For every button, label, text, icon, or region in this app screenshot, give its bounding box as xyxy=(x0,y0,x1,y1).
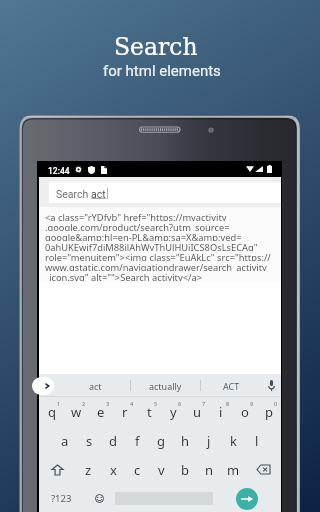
staticText: for html elements xyxy=(103,62,221,80)
staticText: j xyxy=(207,432,211,450)
button[interactable]: o xyxy=(233,397,257,426)
staticText: y xyxy=(170,403,177,421)
button[interactable]: j xyxy=(197,426,221,455)
staticText: 6 xyxy=(178,400,182,407)
staticText: g xyxy=(157,432,165,450)
button[interactable]: z xyxy=(76,455,101,484)
button[interactable]: d xyxy=(101,426,125,455)
staticText: z xyxy=(85,461,92,479)
staticText: u xyxy=(193,403,202,421)
staticText: ACT xyxy=(223,380,240,392)
button[interactable]: n xyxy=(197,455,221,484)
button[interactable]: Enter xyxy=(213,484,281,512)
staticText: d xyxy=(109,432,117,450)
staticText: www.gstatic.com/navigationdrawer/search_… xyxy=(45,261,267,271)
button[interactable]: s xyxy=(77,426,101,455)
button[interactable]: f xyxy=(125,426,149,455)
staticText: v xyxy=(158,461,165,479)
button[interactable]: w xyxy=(64,397,89,426)
button[interactable]: Shift xyxy=(39,455,76,484)
button[interactable]: actually xyxy=(131,374,200,397)
button[interactable]: k xyxy=(221,426,245,455)
staticText: 12:44 xyxy=(48,166,70,176)
staticText: i xyxy=(219,403,223,421)
button[interactable]: l xyxy=(245,426,269,455)
button[interactable]: Space xyxy=(115,484,213,512)
button[interactable]: Voice input xyxy=(261,374,281,397)
staticText: n xyxy=(205,461,214,479)
staticText: 4 xyxy=(130,400,134,407)
button[interactable]: v xyxy=(149,455,173,484)
button[interactable]: More suggestions xyxy=(32,377,54,395)
staticText: 0 xyxy=(274,400,278,407)
button[interactable]: m xyxy=(221,455,245,484)
button[interactable]: Search xyxy=(49,182,281,203)
button[interactable]: ACT xyxy=(201,374,261,397)
staticText: f xyxy=(135,432,140,450)
staticText: m xyxy=(227,461,240,479)
staticText: a xyxy=(61,432,69,450)
staticText: 0ahUKEwjf7diM88jlAhWyThUlHUiICS8QsLsECAg… xyxy=(45,241,258,251)
staticText: r xyxy=(122,403,128,421)
staticText: actually xyxy=(149,380,182,392)
staticText: 5 xyxy=(154,400,158,407)
staticText: _icon.svg" alt="">Search activity</a> xyxy=(45,271,202,281)
button[interactable]: ?123 xyxy=(39,484,84,512)
staticText: 7 xyxy=(202,400,206,407)
button[interactable]: r xyxy=(113,397,137,426)
staticText: s xyxy=(86,432,93,450)
staticText: Search xyxy=(114,33,198,60)
staticText: k xyxy=(230,432,237,450)
button[interactable]: p xyxy=(257,397,281,426)
button[interactable]: g xyxy=(149,426,173,455)
button[interactable]: h xyxy=(173,426,197,455)
staticText: l xyxy=(255,432,259,450)
staticText: 9 xyxy=(250,400,254,407)
staticText: ?123 xyxy=(51,492,72,505)
staticText: h xyxy=(181,432,190,450)
staticText: c xyxy=(134,461,141,479)
button[interactable]: act xyxy=(61,374,130,397)
button[interactable]: a xyxy=(52,426,77,455)
staticText: e xyxy=(97,403,105,421)
button[interactable]: q xyxy=(39,397,64,426)
staticText: 8 xyxy=(226,400,230,407)
button[interactable]: b xyxy=(173,455,197,484)
staticText: 1 xyxy=(57,400,61,407)
staticText: <a class="rYDfvb" href="https://myactivi… xyxy=(45,211,227,221)
staticText: act xyxy=(91,188,106,200)
staticText: b xyxy=(181,461,189,479)
staticText: x xyxy=(110,461,117,479)
staticText: Search xyxy=(56,188,91,200)
staticText: act xyxy=(89,380,102,392)
button[interactable]: x xyxy=(101,455,125,484)
staticText: o xyxy=(241,403,249,421)
button[interactable]: y xyxy=(161,397,185,426)
button[interactable]: Backspace xyxy=(245,455,281,484)
button[interactable]: t xyxy=(137,397,161,426)
staticText: google&amp;hl=en-PL&amp;sa=X&amp;ved= xyxy=(45,231,242,241)
staticText: 3 xyxy=(106,400,110,407)
button[interactable]: Emoji xyxy=(84,484,115,512)
button[interactable]: e xyxy=(89,397,113,426)
staticText: t xyxy=(147,403,152,421)
button[interactable]: u xyxy=(185,397,209,426)
staticText: p xyxy=(265,403,273,421)
staticText: 2 xyxy=(82,400,86,407)
button[interactable]: i xyxy=(209,397,233,426)
staticText: q xyxy=(48,403,56,421)
staticText: .google.com/product/search?utm_source= xyxy=(45,221,230,231)
button[interactable]: c xyxy=(125,455,149,484)
staticText: role="menuitem"><img class="EuAkLc" src=… xyxy=(45,251,271,261)
staticText: w xyxy=(71,403,82,421)
